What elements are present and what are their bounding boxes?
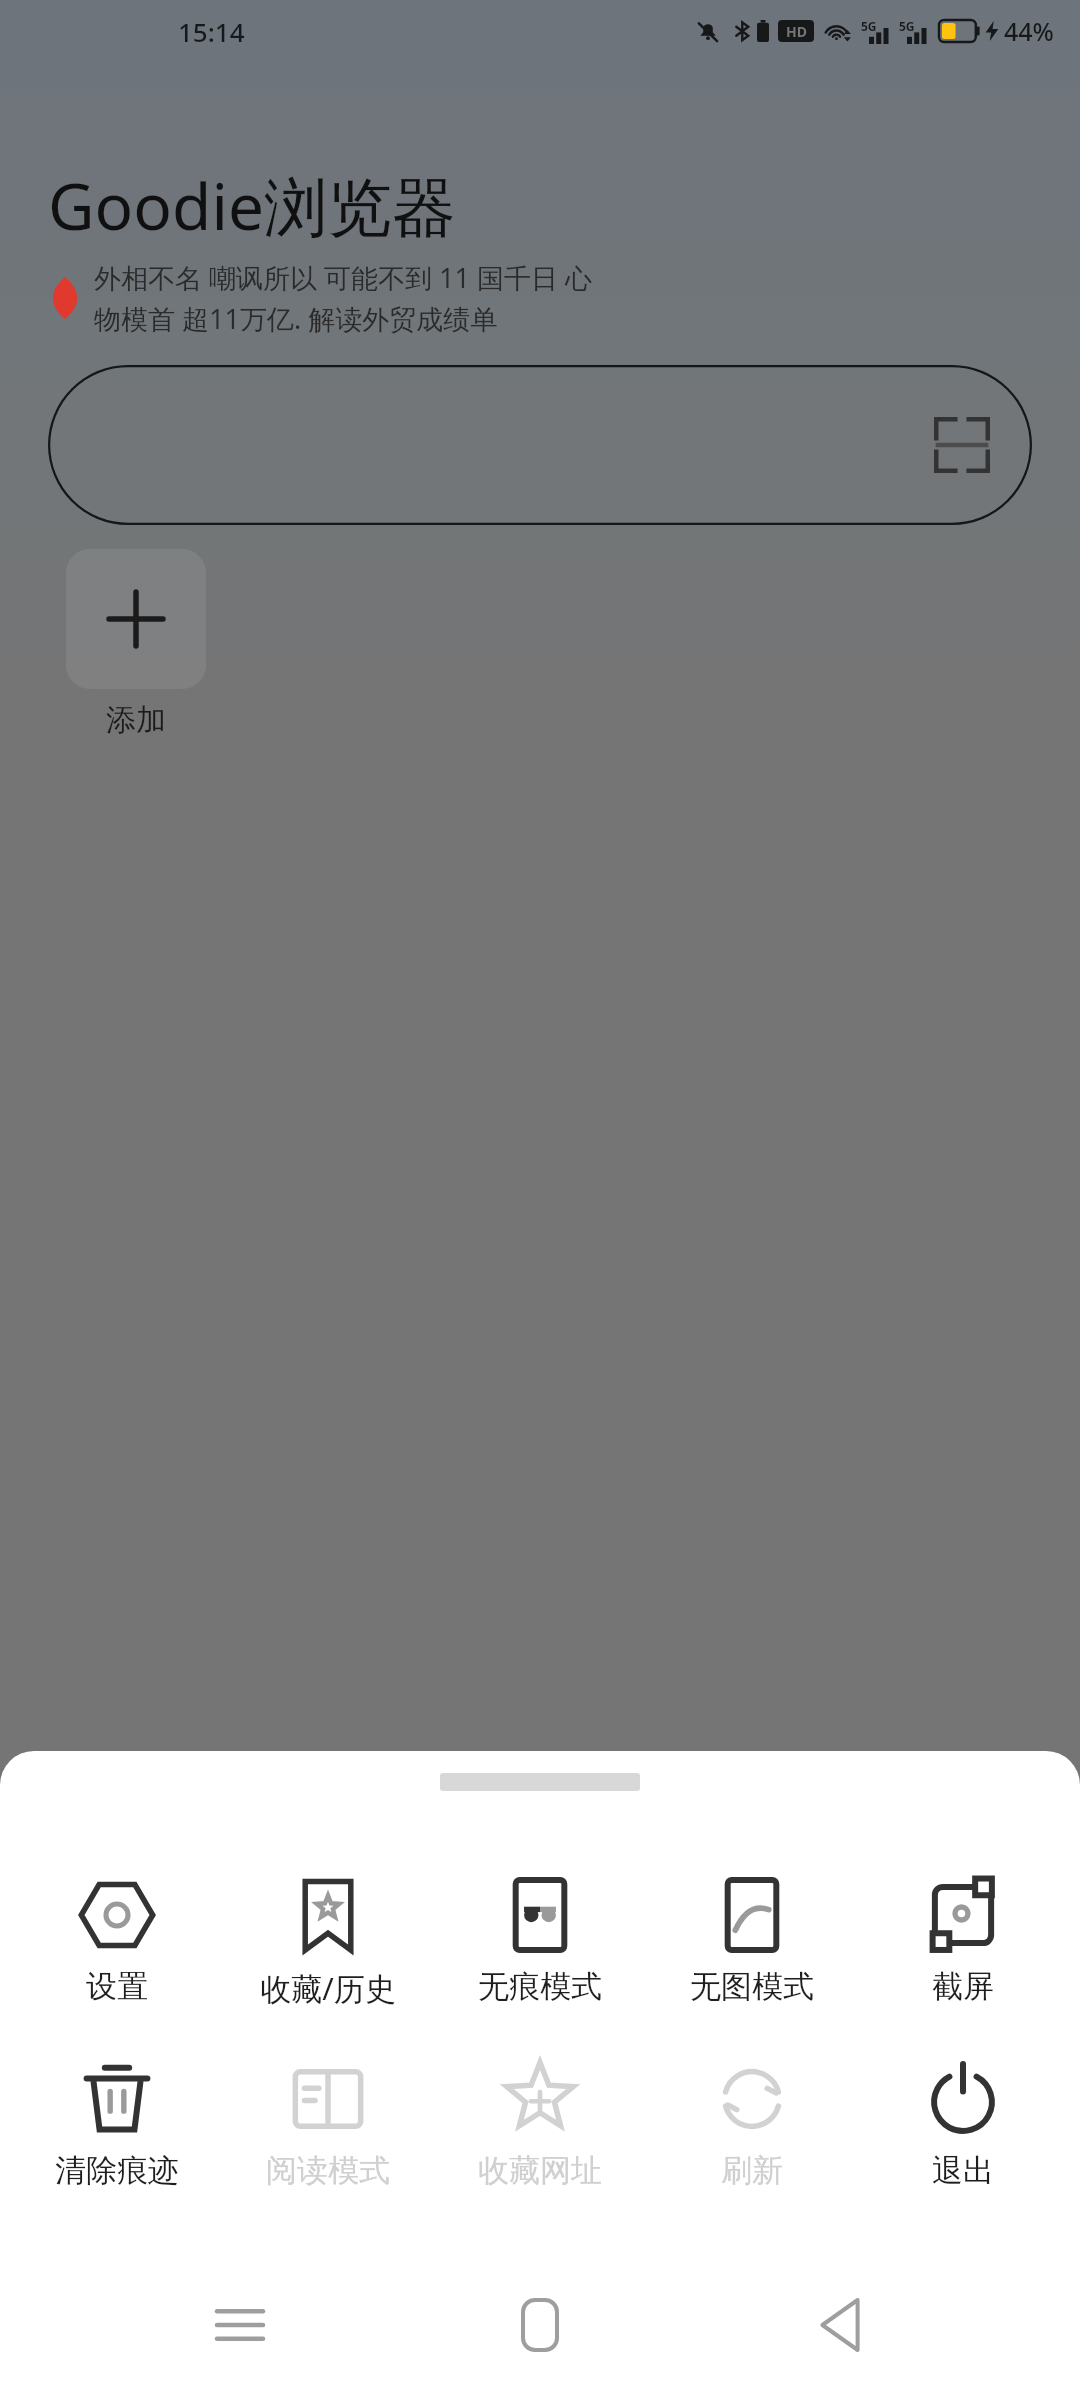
staticText: 无图模式: [690, 1967, 814, 2006]
button[interactable]: 阅读模式: [233, 2061, 423, 2190]
button[interactable]: 清除痕迹: [22, 2061, 212, 2190]
button[interactable]: 截屏: [868, 1877, 1058, 2006]
staticText: 5G: [861, 18, 877, 34]
button[interactable]: 刷新: [657, 2061, 847, 2190]
button[interactable]: 收藏/历史: [233, 1877, 423, 2009]
staticText: 刷新: [721, 2151, 783, 2190]
button[interactable]: Back: [780, 2265, 900, 2385]
staticText: 截屏: [932, 1967, 994, 2006]
button[interactable]: 无图模式: [657, 1877, 847, 2006]
staticText: 收藏网址: [478, 2151, 602, 2190]
button[interactable]: 无痕模式: [445, 1877, 635, 2006]
button[interactable]: 设置: [22, 1877, 212, 2006]
staticText: 外相不名 嘲讽所以 可能不到 11 国千日 心: [94, 259, 592, 296]
staticText: 设置: [86, 1967, 148, 2006]
staticText: 添加: [106, 701, 166, 739]
button[interactable]: 收藏网址: [445, 2061, 635, 2190]
staticText: 15:14: [178, 14, 245, 49]
button[interactable]: Home: [480, 2265, 600, 2385]
staticText: 44%: [1004, 14, 1054, 48]
button[interactable]: Scan QR code: [934, 417, 990, 473]
staticText: 清除痕迹: [55, 2151, 179, 2190]
button[interactable]: 添加: [62, 549, 210, 739]
button[interactable]: Recent apps: [180, 2265, 300, 2385]
staticText: 物模首 超11万亿. 解读外贸成绩单: [94, 300, 498, 337]
staticText: 5G: [899, 18, 915, 34]
staticText: 退出: [932, 2151, 994, 2190]
button[interactable]: Scan QR code: [48, 365, 1032, 525]
staticText: 阅读模式: [266, 2151, 390, 2190]
staticText: Goodie浏览器: [48, 162, 456, 249]
staticText: 收藏/历史: [260, 1967, 396, 2009]
staticText: HD: [786, 22, 807, 41]
staticText: 无痕模式: [478, 1967, 602, 2006]
button[interactable]: 退出: [868, 2061, 1058, 2190]
